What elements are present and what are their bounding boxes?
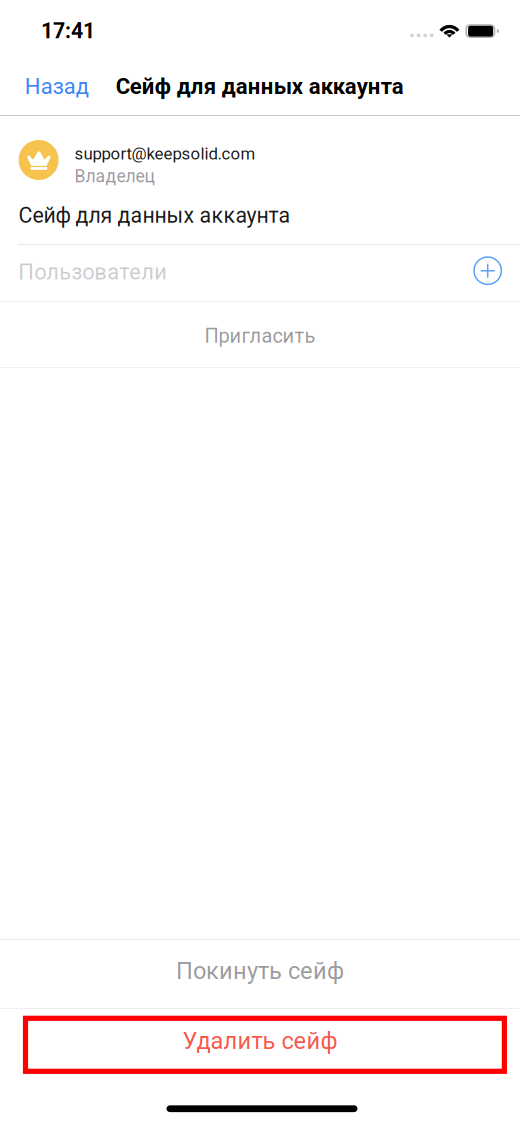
staticText: Сейф для данных аккаунта xyxy=(18,203,290,228)
staticText: Пригласить xyxy=(204,324,315,348)
button[interactable]: Покинуть сейф xyxy=(0,0,520,66)
staticText: Удалить сейф xyxy=(182,1027,337,1055)
button[interactable]: Назад xyxy=(0,0,520,52)
staticText: Владелец xyxy=(74,166,154,187)
staticText: 17:41 xyxy=(41,18,95,43)
button[interactable]: Добавить пользователя xyxy=(0,0,520,47)
staticText: Назад xyxy=(25,73,89,99)
staticText: Пользователи xyxy=(18,259,167,285)
staticText: support@keepsolid.com xyxy=(74,144,255,164)
button[interactable]: Пригласить xyxy=(0,0,520,62)
staticText: Покинуть сейф xyxy=(176,957,344,985)
staticText: Сейф для данных аккаунта xyxy=(116,73,404,99)
button[interactable]: Удалить сейф xyxy=(0,0,520,66)
